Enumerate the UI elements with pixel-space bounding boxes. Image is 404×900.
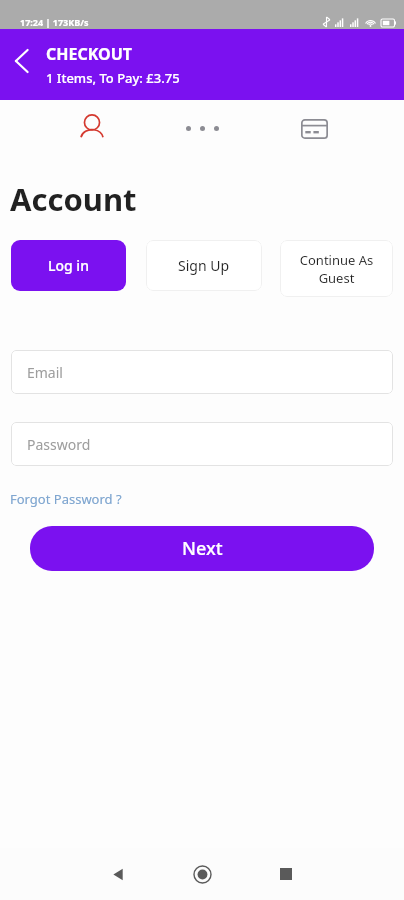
button[interactable]: Email <box>11 350 393 394</box>
button[interactable]: Home <box>180 852 224 896</box>
button[interactable]: Sign Up <box>146 240 262 291</box>
staticText: Sign Up <box>178 256 230 275</box>
button[interactable]: Recents <box>264 852 308 896</box>
staticText: Account <box>10 178 137 220</box>
staticText: Next <box>182 536 223 561</box>
staticText: 1 Items, To Pay: £3.75 <box>46 69 180 87</box>
button[interactable]: Forgot Password ? <box>10 488 122 510</box>
button[interactable]: Back <box>0 39 44 83</box>
button[interactable]: Log in <box>11 240 126 291</box>
staticText: CHECKOUT <box>46 43 133 65</box>
staticText: Password <box>27 435 91 454</box>
staticText: Email <box>27 363 63 382</box>
button[interactable]: Continue As Guest <box>280 240 393 297</box>
button[interactable]: Payment step <box>294 109 334 149</box>
staticText: Continue As Guest <box>286 251 387 287</box>
staticText: Forgot Password ? <box>10 490 122 508</box>
staticText: Log in <box>48 256 89 275</box>
button[interactable]: Password <box>11 422 393 466</box>
button[interactable]: Back <box>96 852 140 896</box>
button[interactable]: Next <box>30 526 374 571</box>
staticText: 17:24 | 173KB/s <box>20 16 89 28</box>
button[interactable]: Account step <box>72 109 112 149</box>
